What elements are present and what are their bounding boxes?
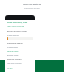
staticText: All set xyxy=(7,67,13,70)
staticText: 3 weak items xyxy=(7,46,19,48)
staticText: Backup ready xyxy=(7,54,19,56)
staticText: Everything in one app xyxy=(24,7,40,9)
staticText: Last sync 2m ago xyxy=(7,62,22,64)
staticText: Devices synced xyxy=(7,58,22,61)
staticText: Password health xyxy=(7,42,23,45)
staticText: Secure notes xyxy=(7,50,19,53)
staticText: Recent activity today xyxy=(7,30,27,33)
staticText: Good morning, Alex xyxy=(7,21,28,24)
staticText: Your vault is secure xyxy=(7,25,25,28)
staticText: 2 new sign-ins xyxy=(7,34,20,36)
staticText: Secure your digital life xyxy=(23,3,41,5)
